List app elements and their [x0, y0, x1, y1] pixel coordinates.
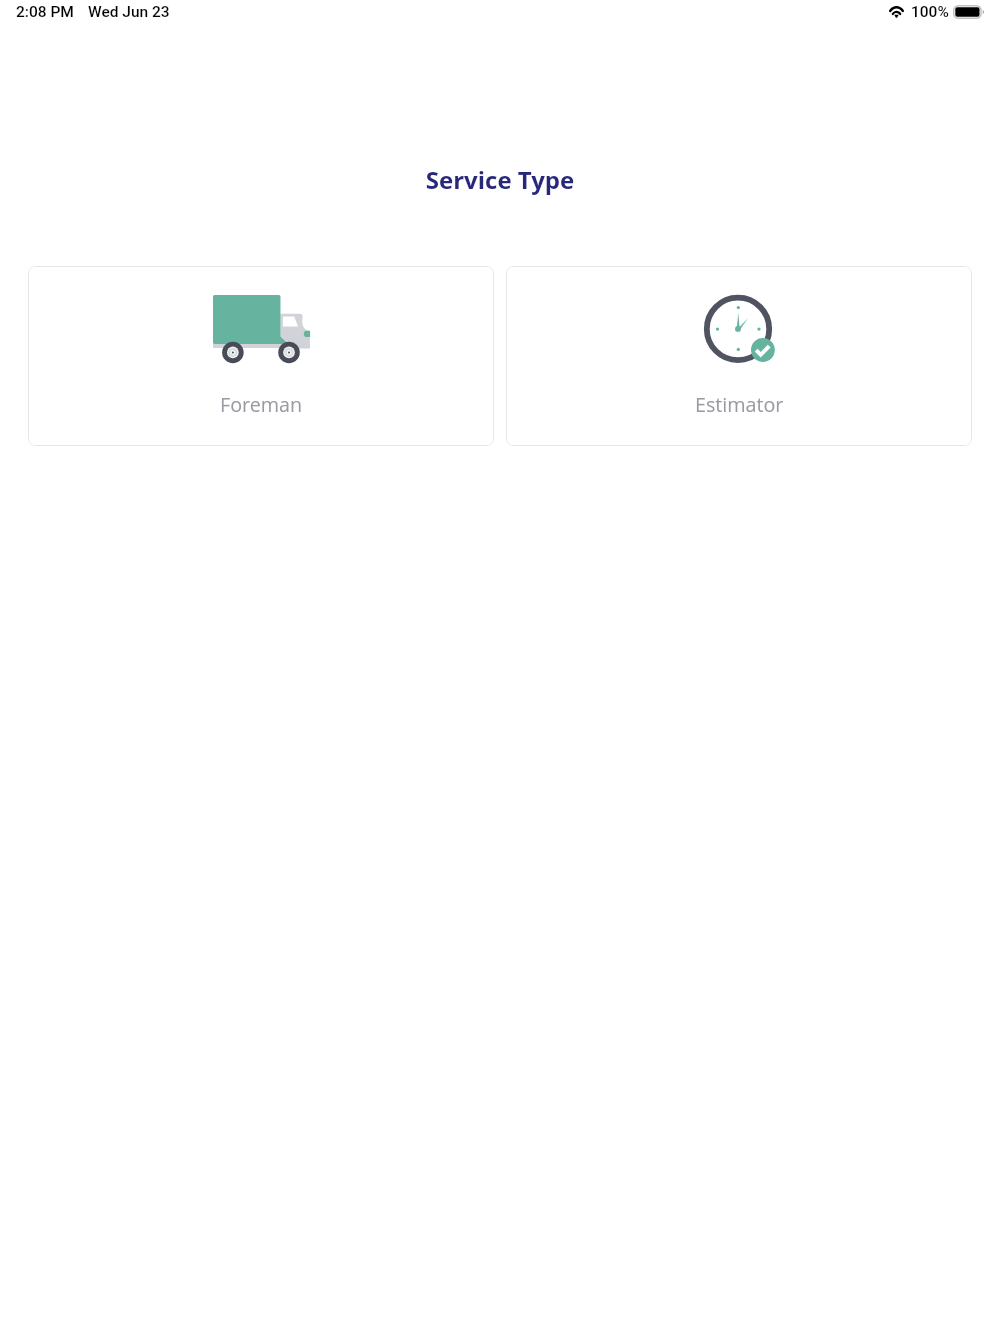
staticText: 2:08 PM — [16, 3, 74, 21]
staticText: 100% — [911, 3, 949, 21]
staticText: Foreman — [220, 391, 303, 418]
staticText: Service Type — [0, 163, 1000, 196]
other: Wi-Fi — [888, 6, 905, 18]
staticText: Estimator — [695, 391, 784, 418]
other: Delivery truck — [213, 295, 310, 363]
other: Battery 100 percent — [953, 5, 984, 19]
other: Clock with check mark — [704, 295, 775, 363]
staticText: Wed Jun 23 — [88, 3, 170, 21]
button[interactable]: Delivery truck — [28, 266, 494, 446]
button[interactable]: Clock with check mark — [506, 266, 972, 446]
